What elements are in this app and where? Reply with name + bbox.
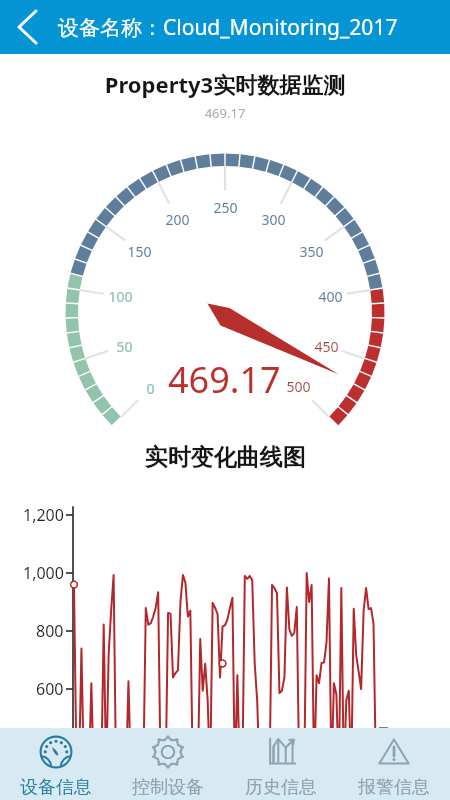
staticText: 450: [314, 337, 339, 356]
staticText: 200: [165, 210, 190, 229]
staticText: 150: [127, 242, 152, 261]
button[interactable]: 控制设备: [112, 728, 224, 800]
staticText: 50: [116, 337, 133, 356]
staticText: 设备名称：Cloud_Monitoring_2017: [58, 13, 398, 42]
staticText: 350: [299, 242, 324, 261]
staticText: 设备信息: [20, 776, 92, 799]
button[interactable]: 历史信息: [224, 728, 337, 800]
staticText: 1,000: [23, 562, 64, 584]
staticText: 250: [213, 198, 238, 217]
staticText: 实时变化曲线图: [0, 443, 450, 472]
button[interactable]: 报警信息: [337, 728, 450, 800]
staticText: Property3实时数据监测: [0, 69, 450, 99]
staticText: 100: [108, 287, 133, 306]
button[interactable]: 设备信息: [0, 728, 112, 800]
staticText: 1,200: [23, 504, 64, 526]
staticText: 500: [286, 377, 311, 396]
staticText: 控制设备: [132, 776, 204, 799]
staticText: 300: [261, 210, 286, 229]
button[interactable]: Back: [0, 0, 54, 54]
staticText: 历史信息: [245, 776, 317, 799]
staticText: 469.17: [0, 104, 450, 122]
staticText: 800: [36, 620, 64, 642]
staticText: 600: [36, 678, 64, 700]
staticText: 400: [318, 287, 343, 306]
staticText: 469.17: [168, 355, 281, 404]
staticText: 0: [146, 379, 155, 398]
staticText: 报警信息: [358, 776, 430, 799]
